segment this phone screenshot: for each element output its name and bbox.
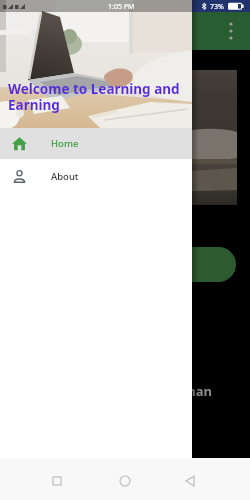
staticText: 1:05 PM xyxy=(108,2,135,12)
staticText: Home xyxy=(51,137,79,150)
button[interactable]: Home xyxy=(0,128,192,159)
staticText: Muhammad Usman xyxy=(85,382,212,400)
staticText: 73% xyxy=(210,2,224,12)
button[interactable]: Get Started xyxy=(24,247,236,282)
button[interactable]: About xyxy=(0,159,192,193)
staticText: About xyxy=(51,170,79,183)
staticText: Welcome to Learning and Earning xyxy=(8,80,180,114)
